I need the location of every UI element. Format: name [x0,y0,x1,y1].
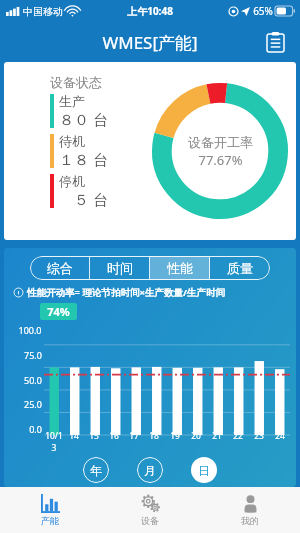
button[interactable]: 日 [191,457,217,483]
staticText: 性能开动率= 理论节拍时间×生产数量/生产时间 [27,286,225,299]
staticText: 15 [89,430,99,442]
staticText: 23 [254,430,264,442]
staticText: WMES[产能] [102,31,198,54]
staticText: 18 [149,430,159,442]
staticText: 74% [47,304,70,319]
staticText: ５ 台 [59,189,108,209]
staticText: ８０ 台 [59,109,108,129]
staticText: 月 [144,463,156,478]
staticText: 生产 [59,93,85,109]
staticText: 65% [253,4,273,18]
button[interactable]: 月 [137,457,163,483]
staticText: 17 [129,430,139,442]
staticText: 设备开工率 [188,134,253,150]
staticText: 24 [275,430,285,442]
staticText: 产能 [41,515,59,526]
button[interactable]: 报表 [260,27,290,57]
staticText: 停机 [59,173,85,189]
staticText: 25.0 [24,398,42,410]
staticText: 设备状态 [50,74,102,90]
staticText: 时间 [107,260,133,276]
staticText: 20 [191,430,201,442]
staticText: 日 [198,463,210,478]
staticText: 年 [90,463,102,478]
button[interactable]: 产能 [0,487,100,533]
staticText: 10/13 [44,430,64,454]
staticText: 19 [170,430,180,442]
staticText: 75.0 [24,349,42,361]
button[interactable]: 时间 [90,256,150,280]
button[interactable]: 性能 [150,256,210,280]
staticText: 性能 [167,260,193,276]
button[interactable]: 质量 [210,256,270,280]
staticText: 设备 [141,515,159,526]
staticText: 16 [109,430,119,442]
staticText: 我的 [241,515,259,526]
staticText: 待机 [59,133,85,149]
staticText: 77.67% [198,151,243,169]
button[interactable]: 我的 [200,487,300,533]
button[interactable]: 年 [83,457,109,483]
button[interactable]: 设备 [100,487,200,533]
staticText: 上午10:48 [127,4,173,18]
staticText: １８ 台 [59,149,108,169]
staticText: 质量 [227,260,253,276]
staticText: 100.0 [18,324,42,336]
staticText: 0.0 [29,423,42,435]
staticText: 21 [212,430,222,442]
button[interactable]: 综合 [30,256,90,280]
staticText: 14 [69,430,79,442]
staticText: 中国移动 [23,5,63,18]
staticText: 50.0 [24,374,42,386]
staticText: 22 [233,430,243,442]
staticText: 综合 [47,260,73,276]
